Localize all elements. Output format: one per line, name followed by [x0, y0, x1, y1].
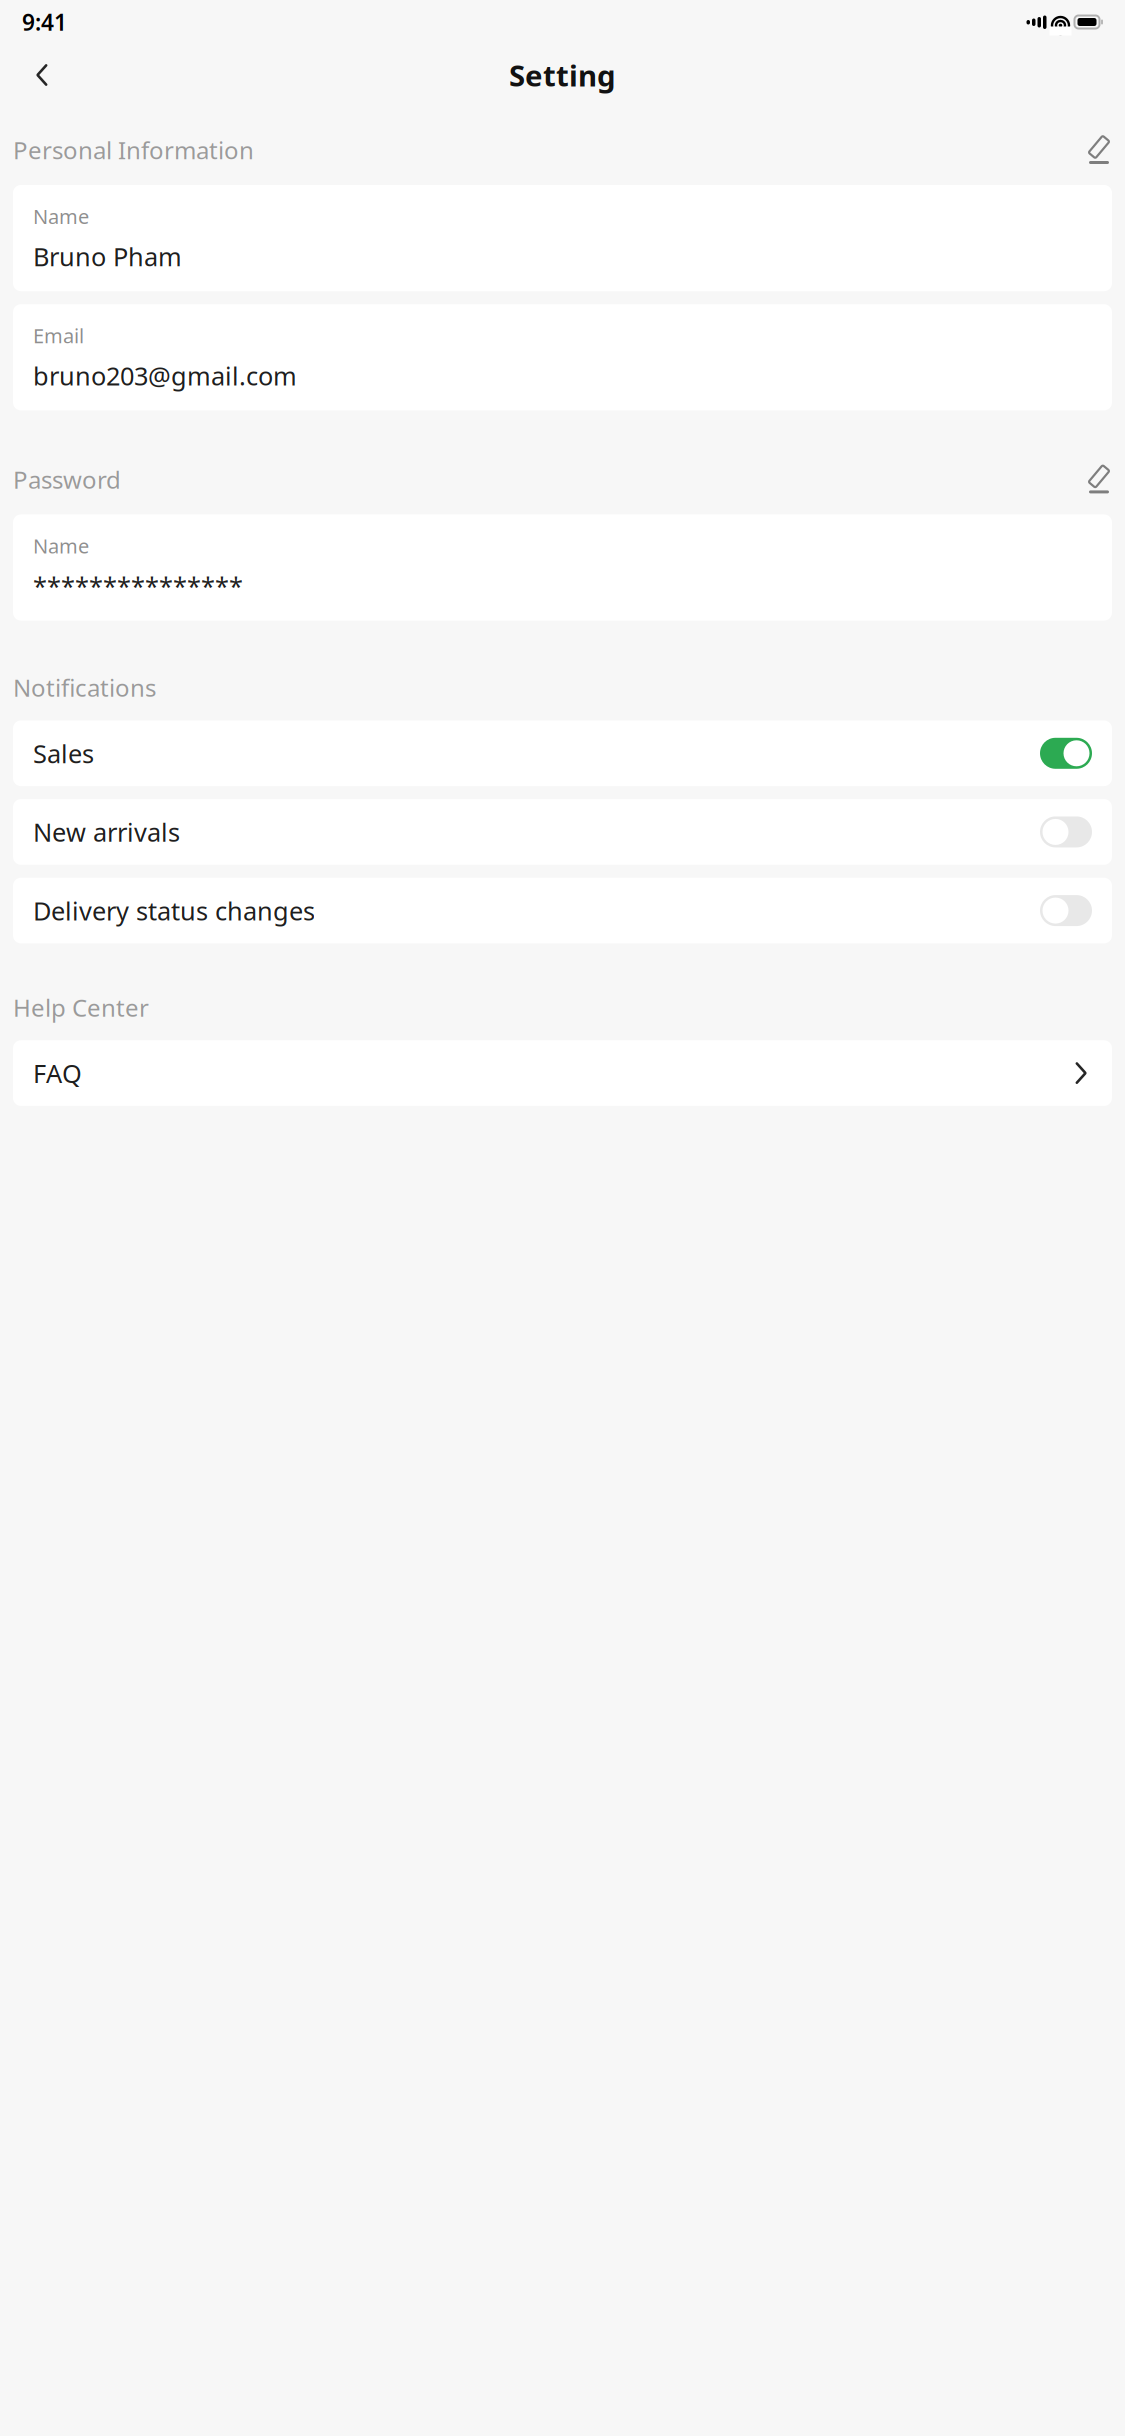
button[interactable]: Sales [13, 720, 1112, 786]
button[interactable]: Back [20, 53, 64, 97]
staticText: bruno203@gmail.com [33, 359, 297, 392]
staticText: Personal Information [13, 134, 254, 166]
staticText: New arrivals [33, 815, 180, 849]
staticText: Setting [509, 55, 616, 94]
button[interactable]: Edit Personal Information [1074, 132, 1112, 168]
staticText: *************** [33, 569, 243, 603]
button[interactable]: FAQ [13, 1040, 1112, 1106]
button[interactable]: Name [13, 514, 1112, 621]
button[interactable]: Name [13, 185, 1112, 291]
staticText: Bruno Pham [33, 240, 182, 273]
staticText: Name [33, 532, 89, 559]
staticText: Sales [33, 736, 94, 770]
button[interactable]: Edit Password [1074, 461, 1112, 497]
staticText: Name [33, 203, 89, 230]
button[interactable]: Email [13, 304, 1112, 410]
staticText: Help Center [13, 991, 149, 1023]
staticText: 9:41 [22, 7, 67, 37]
staticText: Delivery status changes [33, 894, 315, 927]
staticText: Notifications [13, 672, 156, 703]
staticText: Email [33, 322, 84, 349]
staticText: Password [13, 463, 121, 495]
button[interactable]: New arrivals [13, 799, 1112, 865]
button[interactable]: Delivery status changes [13, 878, 1112, 943]
staticText: FAQ [33, 1056, 82, 1090]
